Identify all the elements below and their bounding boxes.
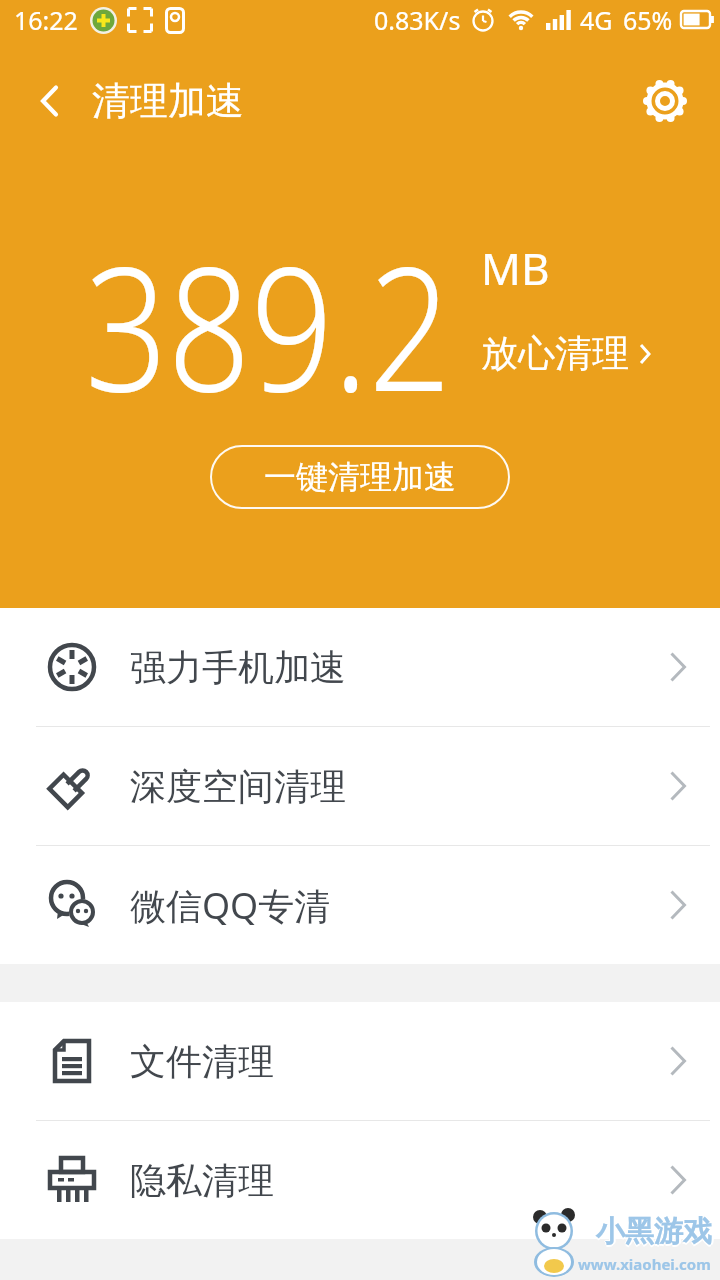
button[interactable]: 微信QQ专清 xyxy=(0,846,720,964)
button[interactable]: 强力手机加速 xyxy=(0,608,720,726)
staticText: 小黑游戏 xyxy=(596,1215,712,1252)
staticText: 0.83K/s xyxy=(374,3,461,37)
button[interactable]: 一键清理加速 xyxy=(210,445,510,509)
staticText: 小黑游戏 xyxy=(595,1213,711,1250)
button[interactable]: 清理加速 xyxy=(40,77,244,125)
staticText: 小黑游戏 xyxy=(598,1213,714,1250)
staticText: 放心清理 xyxy=(481,330,629,377)
staticText: 小黑游戏 xyxy=(596,1212,712,1249)
staticText: 一键清理加速 xyxy=(264,457,456,497)
staticText: 16:22 xyxy=(14,3,78,37)
button[interactable]: 隐私清理 xyxy=(0,1121,720,1239)
staticText: 微信QQ专清 xyxy=(130,881,331,930)
staticText: 4G xyxy=(580,3,613,37)
staticText: 65% xyxy=(623,3,673,37)
button[interactable]: 放心清理 xyxy=(481,330,651,377)
staticText: 深度空间清理 xyxy=(130,764,346,809)
staticText: www.xiaohei.com xyxy=(578,1254,711,1274)
staticText: 小黑游戏 xyxy=(596,1213,712,1250)
staticText: 强力手机加速 xyxy=(130,645,346,690)
button[interactable]: 深度空间清理 xyxy=(0,727,720,845)
button[interactable] xyxy=(642,78,688,124)
staticText: 隐私清理 xyxy=(130,1158,274,1203)
staticText: 文件清理 xyxy=(130,1039,274,1084)
staticText: MB xyxy=(481,238,550,298)
button[interactable]: 文件清理 xyxy=(0,1002,720,1120)
staticText: 清理加速 xyxy=(92,77,244,125)
staticText: 389.2 xyxy=(85,208,452,441)
